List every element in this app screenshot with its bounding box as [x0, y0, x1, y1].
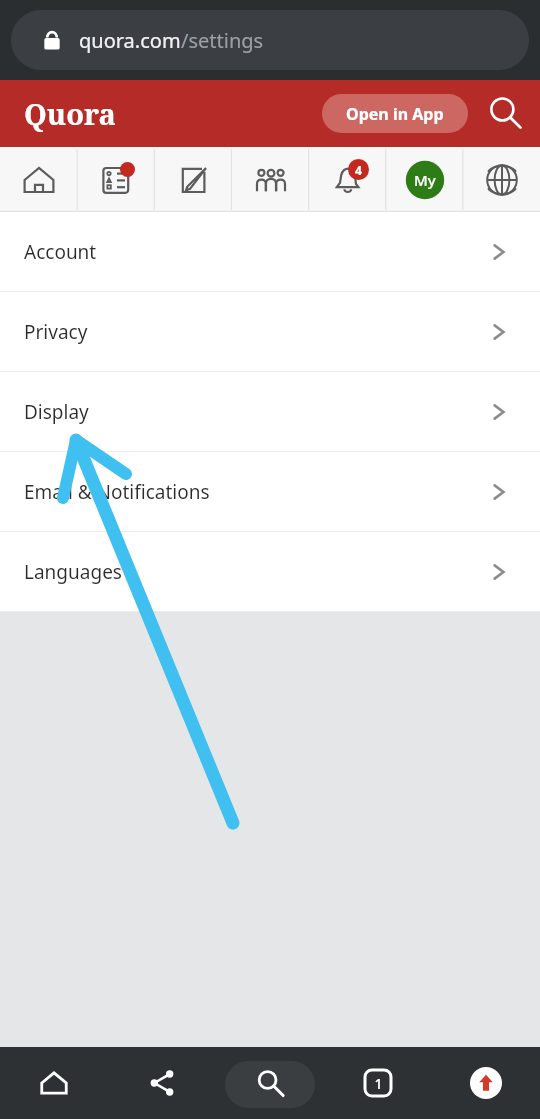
button[interactable]: Languages	[0, 532, 540, 612]
button[interactable]: Display	[0, 372, 540, 452]
staticText: Display	[24, 399, 89, 425]
button[interactable]: Search	[225, 1061, 315, 1108]
button[interactable]: Answer	[155, 147, 232, 212]
button[interactable]: Email & Notifications	[0, 452, 540, 532]
staticText: Email & Notifications	[24, 479, 210, 505]
button[interactable]: Open in App	[322, 94, 468, 133]
button[interactable]: Profile	[386, 147, 463, 212]
staticText: Account	[24, 239, 97, 265]
staticText: Languages	[24, 559, 122, 585]
button[interactable]: Privacy	[0, 292, 540, 372]
staticText: Privacy	[24, 319, 88, 345]
staticText: quora.com	[79, 27, 181, 54]
button[interactable]: Tabs	[324, 1047, 432, 1119]
button[interactable]: Share	[108, 1047, 216, 1119]
button[interactable]: Account	[0, 212, 540, 292]
button[interactable]: Scroll to top	[432, 1047, 540, 1119]
staticText: Open in App	[346, 103, 444, 125]
button[interactable]: Notifications	[309, 147, 386, 212]
button[interactable]: Home	[0, 1047, 108, 1119]
button[interactable]: Following	[78, 147, 155, 212]
staticText: /settings	[181, 27, 264, 54]
button[interactable]: Spaces	[232, 147, 309, 212]
staticText: 4	[355, 162, 362, 178]
button[interactable]: Language	[463, 147, 540, 212]
button[interactable]: Search	[216, 1047, 324, 1119]
button[interactable]: Quora	[24, 94, 116, 133]
button[interactable]: Search	[483, 91, 527, 135]
staticText: My	[414, 170, 436, 190]
button[interactable]: quora.com	[11, 10, 529, 70]
staticText: 1	[374, 1074, 383, 1093]
button[interactable]: Home	[0, 147, 78, 212]
